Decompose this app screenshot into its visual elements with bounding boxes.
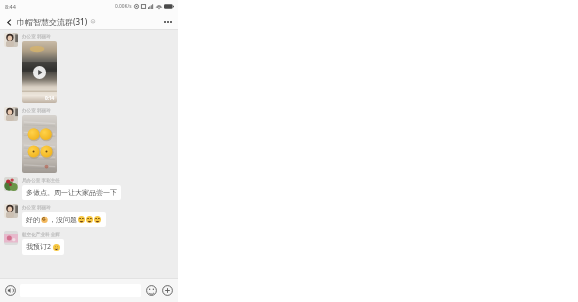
staticText: 办公室 郭丽玲	[22, 204, 51, 210]
button[interactable]: Photo	[22, 115, 57, 173]
button[interactable]: Voice input	[4, 284, 17, 297]
button[interactable]: Play video	[22, 41, 57, 103]
button[interactable]	[4, 33, 18, 47]
button[interactable]: Emoji	[145, 284, 158, 297]
staticText: ，没问题	[49, 215, 77, 224]
button[interactable]: More options	[161, 15, 175, 29]
button[interactable]: Back	[2, 15, 16, 29]
button[interactable]	[4, 107, 18, 121]
button[interactable]: 航空化产业科 全辉	[4, 231, 172, 255]
button[interactable]: More functions	[161, 284, 174, 297]
button[interactable]	[4, 204, 18, 218]
button[interactable]	[4, 231, 18, 245]
button[interactable]: 多做点。周一让大家品尝一下	[22, 185, 121, 200]
staticText: 好的	[26, 215, 40, 224]
staticText: 局办公室 李彩主任	[22, 177, 60, 183]
staticText: 0.00K/s	[115, 3, 132, 10]
button[interactable]: 好的	[22, 212, 106, 227]
staticText: 我预订2	[26, 242, 52, 252]
staticText: 巾帽智慧交流群(31)	[17, 16, 88, 27]
button[interactable]	[4, 177, 18, 191]
button[interactable]: 办公室 郭丽玲	[4, 33, 172, 103]
staticText: 办公室 郭丽玲	[22, 33, 51, 39]
button[interactable]: 办公室 郭丽玲	[4, 204, 172, 227]
staticText: 8:44	[5, 3, 16, 10]
staticText: 办公室 郭丽玲	[22, 107, 51, 113]
button[interactable]: 我预订2	[22, 239, 64, 255]
button[interactable]: 办公室 郭丽玲	[4, 107, 172, 173]
button[interactable]: 局办公室 李彩主任	[4, 177, 172, 200]
staticText: 0:14	[45, 95, 55, 101]
staticText: 多做点。周一让大家品尝一下	[26, 188, 117, 197]
staticText: 航空化产业科 全辉	[22, 231, 60, 237]
